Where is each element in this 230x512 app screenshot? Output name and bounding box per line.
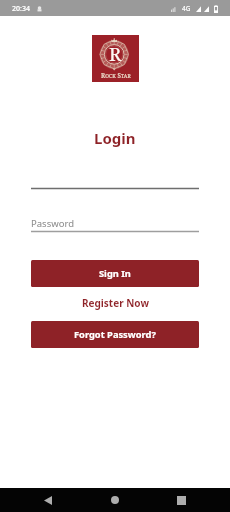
staticText: R	[109, 41, 122, 66]
staticText: 20:34	[12, 4, 30, 14]
staticText: ROCK STAR	[101, 71, 131, 79]
staticText: 4G	[182, 4, 191, 13]
staticText: Forgot Password?	[74, 328, 156, 341]
button[interactable]: Register Now	[0, 294, 230, 312]
button[interactable]: Back	[15, 488, 81, 512]
staticText: Password	[31, 217, 74, 230]
button[interactable]: Recent apps	[148, 488, 215, 512]
button[interactable]	[31, 168, 199, 189]
staticText: Sign In	[99, 267, 131, 280]
staticText: Login	[94, 128, 136, 148]
button[interactable]: Sign In	[31, 260, 199, 287]
staticText: Register Now	[82, 296, 149, 310]
button[interactable]: Home	[81, 488, 148, 512]
button[interactable]: Password	[31, 211, 199, 232]
button[interactable]: Forgot Password?	[31, 321, 199, 348]
